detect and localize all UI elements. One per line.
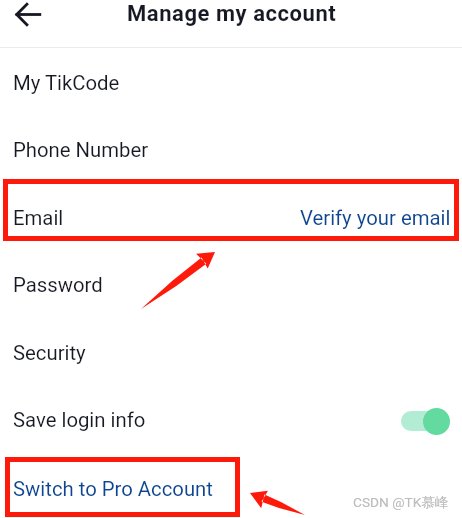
button[interactable]: Security <box>0 319 462 386</box>
staticText: Security <box>13 341 86 365</box>
button[interactable]: Password <box>0 251 462 318</box>
staticText: Email <box>13 206 64 230</box>
staticText: Phone Number <box>13 138 149 162</box>
staticText: CSDN @TK慕峰 <box>353 494 449 511</box>
button[interactable]: My TikCode <box>0 49 462 116</box>
staticText: My TikCode <box>13 71 120 95</box>
staticText: Password <box>13 273 103 297</box>
button[interactable]: Email <box>0 184 462 251</box>
button[interactable]: Switch to Pro Account <box>0 455 462 518</box>
button[interactable]: Save login info <box>0 386 462 453</box>
button[interactable]: Phone Number <box>0 116 462 183</box>
button[interactable]: Back <box>3 0 33 30</box>
staticText: Manage my account <box>127 1 337 27</box>
button[interactable]: Save login info switch, on <box>401 407 449 435</box>
staticText: Save login info <box>13 408 146 432</box>
button[interactable]: Manage my account <box>0 0 462 46</box>
button[interactable]: Verify your email <box>300 206 451 230</box>
staticText: Switch to Pro Account <box>13 477 213 501</box>
